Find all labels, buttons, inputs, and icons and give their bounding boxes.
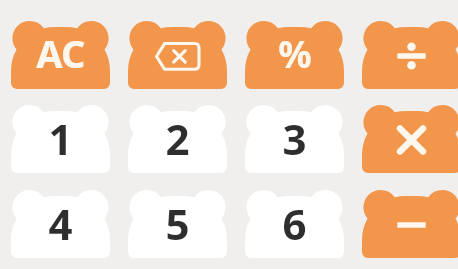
button[interactable]: Minus [362,190,458,258]
staticText: 6 [282,195,307,252]
button[interactable]: Divide [362,21,458,89]
staticText: AC [36,27,85,79]
button[interactable]: Backspace [128,21,227,89]
staticText: % [278,28,312,78]
button[interactable]: 2 [128,105,227,173]
staticText: 5 [165,195,190,252]
button[interactable]: % [245,21,344,89]
button[interactable]: 5 [128,190,227,258]
button[interactable]: 6 [245,190,344,258]
staticText: 1 [48,110,73,167]
staticText: 3 [282,110,307,167]
button[interactable]: 4 [11,190,110,258]
button[interactable]: AC [11,21,110,89]
button[interactable]: Multiply [362,105,458,173]
staticText: 4 [48,195,73,252]
button[interactable]: 1 [11,105,110,173]
button[interactable]: 3 [245,105,344,173]
staticText: 2 [165,110,190,167]
